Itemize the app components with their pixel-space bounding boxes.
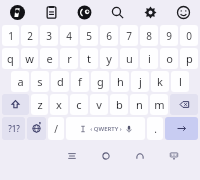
button[interactable]: Recents [55,143,89,169]
button[interactable]: i [140,48,158,69]
button[interactable]: Gboard [0,0,34,24]
staticText: r [67,51,72,66]
button[interactable]: j [131,71,149,92]
button[interactable]: Period [147,117,163,140]
button[interactable]: Back [123,143,157,169]
staticText: 5 [86,29,92,43]
button[interactable]: Stickers [68,0,101,24]
staticText: c [76,97,82,112]
button[interactable]: 4 [60,25,78,46]
button[interactable]: d [51,71,69,92]
staticText: 3 [46,29,52,43]
staticText: m [154,97,165,112]
staticText: s [37,74,43,89]
button[interactable]: 3 [40,25,58,46]
button[interactable]: Slash [48,117,64,140]
button[interactable]: 8 [140,25,158,46]
button[interactable]: t [80,48,98,69]
button[interactable]: p [180,48,198,69]
button[interactable]: Settings [134,0,167,24]
staticText: x [56,97,62,112]
staticText: z [37,97,43,112]
staticText: v [96,97,102,112]
staticText: 6 [106,29,112,43]
button[interactable]: n [130,94,148,115]
button[interactable]: 7 [120,25,138,46]
button[interactable]: Language [27,117,46,140]
button[interactable]: k [151,71,169,92]
button[interactable]: e [40,48,58,69]
staticText: 0 [186,29,192,43]
button[interactable]: 2 [21,25,38,46]
staticText: w [25,51,34,66]
staticText: p [186,51,193,66]
staticText: 8 [146,29,152,43]
staticText: b [116,97,123,112]
staticText: ‹ QWERTY › [90,125,122,133]
button[interactable]: c [70,94,88,115]
button[interactable]: Space [66,117,145,140]
staticText: 9 [166,29,172,43]
button[interactable]: Symbols [2,117,25,140]
button[interactable]: u [120,48,138,69]
staticText: q [7,51,14,66]
staticText: j [139,74,142,89]
staticText: n [136,97,143,112]
button[interactable]: 9 [160,25,178,46]
button[interactable]: h [111,71,129,92]
staticText: d [57,74,64,89]
button[interactable]: Emoji [167,0,200,24]
staticText: k [157,74,163,89]
staticText: h [117,74,124,89]
staticText: 1 [8,29,14,43]
button[interactable]: v [90,94,108,115]
button[interactable]: s [31,71,49,92]
staticText: y [106,51,112,66]
button[interactable]: Enter [165,117,198,140]
button[interactable]: y [100,48,118,69]
button[interactable]: 6 [100,25,118,46]
staticText: a [17,74,24,89]
staticText: ?1? [8,123,20,134]
staticText: g [97,74,104,89]
button[interactable]: x [50,94,68,115]
staticText: / [54,122,58,136]
staticText: i [148,51,151,66]
button[interactable]: r [60,48,78,69]
button[interactable]: o [160,48,178,69]
button[interactable]: l [171,71,189,92]
staticText: o [166,51,173,66]
button[interactable]: q [2,48,19,69]
button[interactable]: 1 [2,25,19,46]
button[interactable]: z [31,94,48,115]
button[interactable]: a [11,71,29,92]
staticText: 4 [66,29,72,43]
staticText: 2 [27,29,33,43]
staticText: . [154,122,157,136]
button[interactable]: m [150,94,168,115]
button[interactable]: Clipboard [34,0,68,24]
button[interactable]: Hide keyboard [157,143,191,169]
staticText: e [46,51,53,66]
button[interactable]: Backspace [170,94,198,115]
button[interactable]: 5 [80,25,98,46]
button[interactable]: w [21,48,38,69]
button[interactable]: b [110,94,128,115]
button[interactable]: Shift [2,94,29,115]
staticText: 7 [126,29,132,43]
button[interactable]: Home [89,143,123,169]
staticText: f [78,74,82,89]
staticText: t [87,51,91,66]
button[interactable]: Search [101,0,134,24]
button[interactable]: f [71,71,89,92]
button[interactable]: g [91,71,109,92]
staticText: l [179,74,182,89]
staticText: u [126,51,133,66]
button[interactable]: 0 [180,25,198,46]
